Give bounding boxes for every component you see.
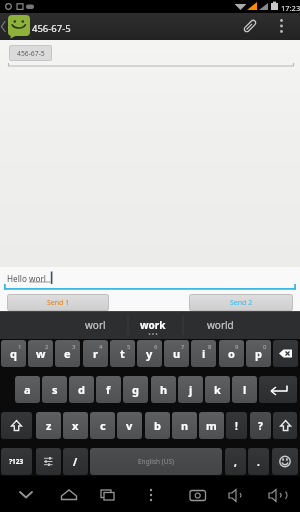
staticText: 456-67-5 bbox=[17, 49, 45, 58]
staticText: 2 bbox=[45, 343, 49, 351]
staticText: x bbox=[72, 418, 79, 433]
staticText: z bbox=[46, 418, 52, 433]
staticText: y bbox=[146, 346, 153, 361]
staticText: v bbox=[126, 418, 133, 433]
staticText: t bbox=[120, 346, 125, 361]
staticText: c bbox=[100, 418, 106, 433]
button[interactable]: t bbox=[110, 340, 135, 367]
button[interactable] bbox=[273, 412, 297, 439]
button[interactable] bbox=[270, 14, 295, 39]
staticText: p bbox=[255, 346, 262, 361]
button[interactable]: x bbox=[63, 412, 88, 439]
button[interactable] bbox=[138, 484, 164, 508]
staticText: worl bbox=[85, 318, 106, 332]
button[interactable] bbox=[1, 412, 32, 439]
staticText: Send 2 bbox=[230, 298, 253, 308]
button[interactable]: j bbox=[178, 376, 203, 403]
button[interactable] bbox=[94, 484, 122, 508]
staticText: k bbox=[214, 382, 221, 397]
button[interactable]: k bbox=[205, 376, 230, 403]
staticText: s bbox=[52, 382, 58, 397]
button[interactable] bbox=[12, 484, 40, 508]
button[interactable] bbox=[55, 484, 83, 508]
staticText: 9 bbox=[235, 343, 239, 351]
staticText: w bbox=[36, 346, 46, 361]
button[interactable] bbox=[222, 484, 250, 508]
staticText: 6 bbox=[154, 343, 158, 351]
staticText: Send 1 bbox=[47, 298, 70, 308]
button[interactable] bbox=[36, 448, 61, 475]
staticText: h bbox=[160, 382, 168, 397]
button[interactable]: , bbox=[225, 448, 246, 475]
button[interactable]: m bbox=[199, 412, 224, 439]
staticText: 5 bbox=[127, 343, 131, 351]
staticText: q bbox=[10, 346, 17, 361]
staticText: o bbox=[228, 346, 235, 361]
button[interactable] bbox=[262, 484, 290, 508]
staticText: l bbox=[243, 382, 247, 397]
staticText: e bbox=[64, 346, 71, 361]
staticText: 456-67-5 bbox=[32, 22, 71, 35]
button[interactable]: h bbox=[151, 376, 176, 403]
button[interactable]: ! bbox=[226, 412, 247, 439]
button[interactable]: d bbox=[69, 376, 94, 403]
button[interactable]: w bbox=[28, 340, 53, 367]
staticText: 17:23 bbox=[281, 3, 300, 13]
button[interactable]: z bbox=[36, 412, 61, 439]
staticText: 0 bbox=[263, 343, 267, 351]
button[interactable]: s bbox=[42, 376, 67, 403]
button[interactable]: r bbox=[83, 340, 108, 367]
button[interactable]: i bbox=[191, 340, 216, 367]
button[interactable] bbox=[272, 448, 298, 475]
staticText: 7 bbox=[181, 343, 185, 351]
button[interactable]: y bbox=[137, 340, 162, 367]
staticText: 1 bbox=[18, 343, 22, 351]
staticText: ? bbox=[258, 419, 263, 433]
button[interactable]: f bbox=[96, 376, 121, 403]
button[interactable]: Send 1 bbox=[7, 294, 109, 311]
staticText: a bbox=[24, 382, 31, 397]
staticText: , bbox=[234, 455, 237, 469]
button[interactable]: n bbox=[172, 412, 197, 439]
staticText: Hello worl bbox=[7, 273, 46, 284]
button[interactable]: e bbox=[55, 340, 80, 367]
staticText: m bbox=[206, 418, 217, 433]
button[interactable]: u bbox=[164, 340, 189, 367]
button[interactable]: . bbox=[248, 448, 269, 475]
button[interactable]: ?123 bbox=[1, 448, 32, 475]
button[interactable]: / bbox=[63, 448, 88, 475]
staticText: English (US) bbox=[138, 457, 175, 466]
staticText: 3 bbox=[72, 343, 76, 351]
button[interactable]: l bbox=[232, 376, 257, 403]
button[interactable] bbox=[259, 376, 297, 403]
button[interactable] bbox=[238, 14, 263, 39]
button[interactable]: p bbox=[246, 340, 271, 367]
button[interactable]: worl bbox=[70, 313, 120, 337]
button[interactable]: c bbox=[90, 412, 115, 439]
staticText: f bbox=[106, 382, 111, 397]
button[interactable]: Send 2 bbox=[189, 294, 293, 311]
staticText: u bbox=[173, 346, 181, 361]
button[interactable]: 456-67-5 bbox=[9, 45, 52, 61]
staticText: n bbox=[181, 418, 189, 433]
button[interactable]: world bbox=[195, 313, 245, 337]
staticText: ?123 bbox=[9, 457, 24, 466]
button[interactable]: b bbox=[145, 412, 170, 439]
button[interactable] bbox=[273, 340, 298, 367]
staticText: 8 bbox=[208, 343, 212, 351]
staticText: . bbox=[257, 455, 260, 469]
button[interactable]: v bbox=[117, 412, 142, 439]
staticText: d bbox=[78, 382, 85, 397]
staticText: g bbox=[132, 382, 139, 397]
button[interactable]: q bbox=[1, 340, 26, 367]
button[interactable]: ? bbox=[250, 412, 271, 439]
staticText: b bbox=[154, 418, 161, 433]
button[interactable]: work bbox=[130, 313, 176, 337]
button[interactable] bbox=[184, 484, 211, 508]
button[interactable]: a bbox=[15, 376, 40, 403]
button[interactable] bbox=[90, 448, 222, 475]
button[interactable]: o bbox=[219, 340, 244, 367]
button[interactable]: g bbox=[123, 376, 148, 403]
staticText: work bbox=[140, 318, 166, 332]
staticText: j bbox=[189, 382, 193, 397]
